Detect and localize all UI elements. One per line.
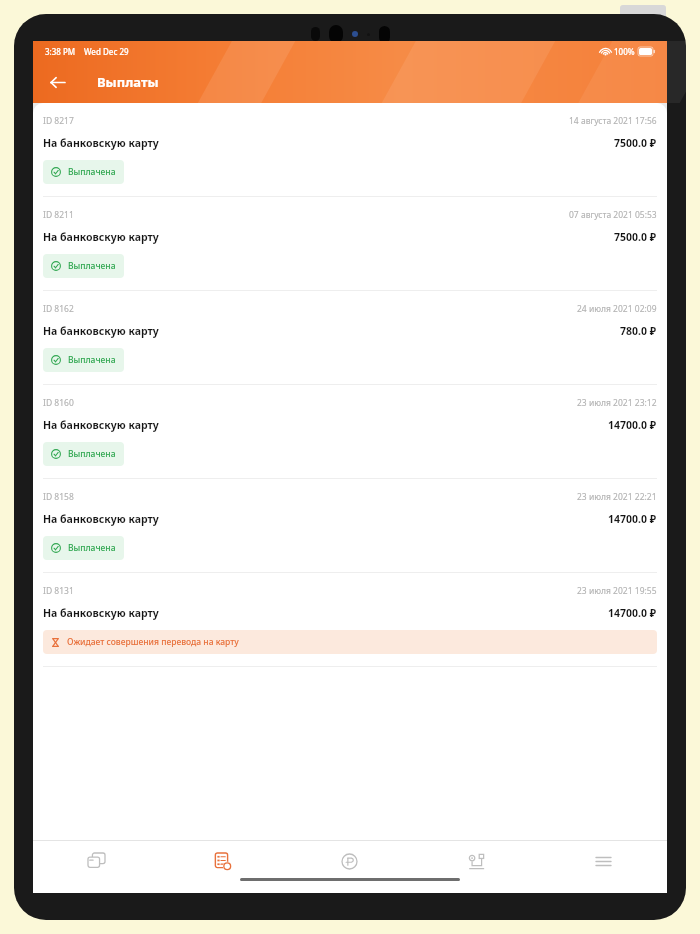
staticText: Выплачена bbox=[68, 354, 116, 366]
staticText: 24 июля 2021 02:09 bbox=[577, 303, 657, 315]
button[interactable]: ID 8162 bbox=[33, 291, 667, 385]
staticText: 780.0 ₽ bbox=[620, 324, 657, 338]
button[interactable]: Finance bbox=[286, 841, 413, 881]
staticText: ID 8158 bbox=[43, 491, 74, 503]
button[interactable]: Back bbox=[39, 64, 75, 100]
staticText: Выплачена bbox=[68, 542, 116, 554]
staticText: На банковскую карту bbox=[43, 418, 159, 432]
staticText: На банковскую карту bbox=[43, 512, 159, 526]
button[interactable]: Menu bbox=[540, 841, 667, 881]
staticText: На банковскую карту bbox=[43, 136, 159, 150]
staticText: На банковскую карту bbox=[43, 324, 159, 338]
button[interactable]: ID 8158 bbox=[33, 479, 667, 573]
staticText: 14 августа 2021 17:56 bbox=[569, 115, 657, 127]
staticText: 7500.0 ₽ bbox=[614, 136, 657, 150]
staticText: 100% bbox=[614, 46, 635, 57]
button[interactable]: ID 8131 bbox=[33, 573, 667, 667]
staticText: Выплачена bbox=[68, 448, 116, 460]
staticText: 07 августа 2021 05:53 bbox=[569, 209, 657, 221]
staticText: Выплачена bbox=[68, 166, 116, 178]
staticText: ID 8160 bbox=[43, 397, 74, 409]
button[interactable]: Orders bbox=[33, 841, 159, 881]
staticText: На банковскую карту bbox=[43, 606, 159, 620]
staticText: 7500.0 ₽ bbox=[614, 230, 657, 244]
staticText: ID 8211 bbox=[43, 209, 74, 221]
staticText: 14700.0 ₽ bbox=[608, 418, 657, 432]
staticText: 14700.0 ₽ bbox=[608, 606, 657, 620]
staticText: 23 июля 2021 23:12 bbox=[577, 397, 657, 409]
staticText: 14700.0 ₽ bbox=[608, 512, 657, 526]
button[interactable]: Payouts bbox=[159, 841, 286, 881]
staticText: Выплаты bbox=[97, 73, 159, 91]
button[interactable]: ID 8160 bbox=[33, 385, 667, 479]
staticText: ID 8217 bbox=[43, 115, 74, 127]
staticText: 23 июля 2021 22:21 bbox=[577, 491, 657, 503]
staticText: 23 июля 2021 19:55 bbox=[577, 585, 657, 597]
staticText: ID 8131 bbox=[43, 585, 74, 597]
button[interactable]: ID 8217 bbox=[33, 103, 667, 197]
staticText: Ожидает совершения перевода на карту bbox=[67, 636, 239, 648]
button[interactable]: ID 8211 bbox=[33, 197, 667, 291]
staticText: Wed Dec 29 bbox=[84, 46, 129, 57]
staticText: На банковскую карту bbox=[43, 230, 159, 244]
staticText: 3:38 PM bbox=[45, 46, 76, 57]
staticText: ID 8162 bbox=[43, 303, 74, 315]
button[interactable]: Routes bbox=[413, 841, 540, 881]
staticText: Выплачена bbox=[68, 260, 116, 272]
